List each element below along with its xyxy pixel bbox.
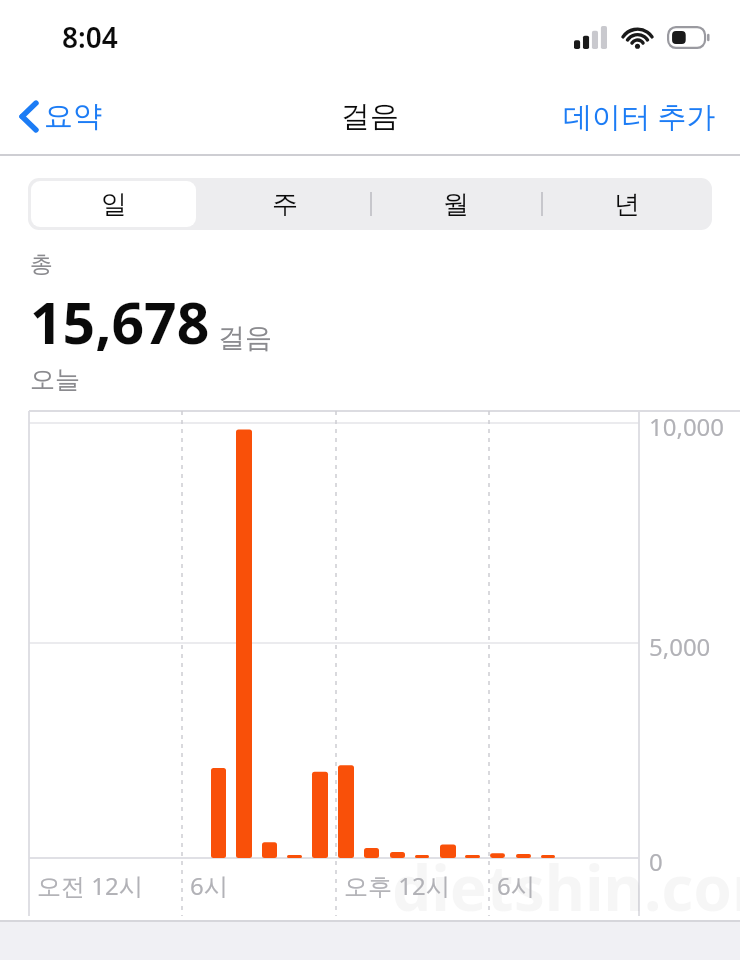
staticText: 0 <box>649 845 663 878</box>
staticText: 8:04 <box>62 18 118 56</box>
staticText: 오늘 <box>30 364 80 395</box>
staticText: 월 <box>443 188 469 221</box>
button[interactable]: dietshin.com <box>0 409 740 920</box>
staticText: 걸음 <box>218 321 272 355</box>
staticText: 6시 <box>190 869 228 902</box>
staticText: 일 <box>101 188 127 221</box>
staticText: 오후 12시 <box>344 869 450 902</box>
button[interactable]: 주 <box>199 178 370 230</box>
staticText: 15,678 <box>30 283 210 361</box>
staticText: 오전 12시 <box>37 869 143 902</box>
button[interactable]: 일 <box>28 178 199 230</box>
staticText: 주 <box>272 188 298 221</box>
staticText: 데이터 추가 <box>563 96 716 136</box>
staticText: 걸음 <box>341 98 399 135</box>
button[interactable]: Back to 요약 <box>0 88 118 145</box>
staticText: 5,000 <box>649 630 711 663</box>
staticText: 총 <box>30 250 53 279</box>
button[interactable]: 월 <box>370 178 541 230</box>
staticText: 요약 <box>44 98 102 135</box>
staticText: 6시 <box>497 869 535 902</box>
staticText: 년 <box>614 188 640 221</box>
button[interactable]: 데이터 추가 <box>547 86 740 146</box>
staticText: 10,000 <box>649 410 725 443</box>
staticText: dietshin.com <box>392 845 740 929</box>
button[interactable]: 년 <box>541 178 712 230</box>
